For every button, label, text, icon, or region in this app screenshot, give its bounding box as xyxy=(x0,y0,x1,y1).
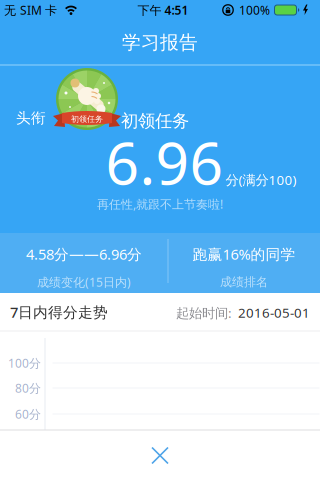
staticText: 头衔 xyxy=(16,109,46,127)
staticText: 跑赢16%的同学 xyxy=(192,244,295,264)
staticText: 初领任务 xyxy=(121,110,189,132)
staticText: 2016-05-01 xyxy=(238,304,310,321)
staticText: 60分 xyxy=(15,406,41,422)
staticText: 80分 xyxy=(15,380,41,396)
staticText: 初领任务 xyxy=(71,114,103,124)
staticText: 100分 xyxy=(8,355,41,371)
staticText: 再任性,就跟不上节奏啦! xyxy=(97,196,223,212)
staticText: 无 SIM 卡 xyxy=(4,2,57,18)
staticText: 100% xyxy=(239,2,270,18)
staticText: 学习报告 xyxy=(122,31,198,54)
staticText: 下午 4:51 xyxy=(137,2,188,18)
staticText: 4.58分——6.96分 xyxy=(26,244,142,264)
staticText: 成绩排名 xyxy=(220,275,268,289)
button[interactable]: 关闭 xyxy=(0,431,320,480)
staticText: 起始时间: xyxy=(176,304,232,322)
staticText: 7日内得分走势 xyxy=(10,302,108,322)
staticText: 分(满分100) xyxy=(225,171,296,189)
staticText: 成绩变化(15日内) xyxy=(37,274,131,290)
staticText: 6.96 xyxy=(105,123,223,201)
